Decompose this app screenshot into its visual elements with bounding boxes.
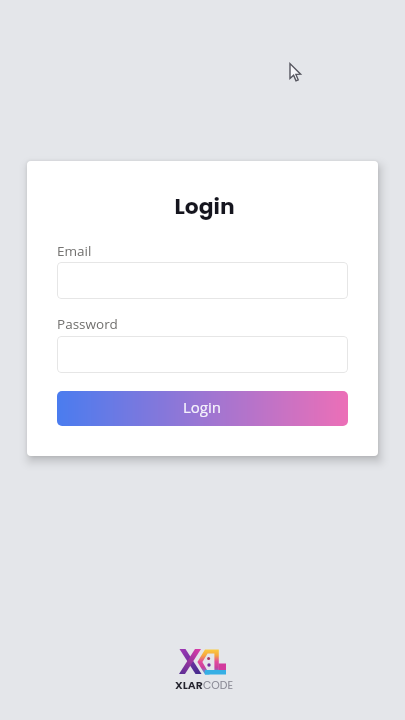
button[interactable]: Login [57,391,348,426]
staticText: Login [183,397,222,417]
button[interactable]: Text input field [57,336,348,373]
staticText: XLAR [175,678,203,693]
staticText: Password [57,315,118,333]
staticText: Email [57,242,92,260]
button[interactable]: Text input field [57,262,348,299]
other: Pointer [289,63,305,83]
staticText: Login [29,191,378,222]
staticText: CODE [203,678,233,693]
